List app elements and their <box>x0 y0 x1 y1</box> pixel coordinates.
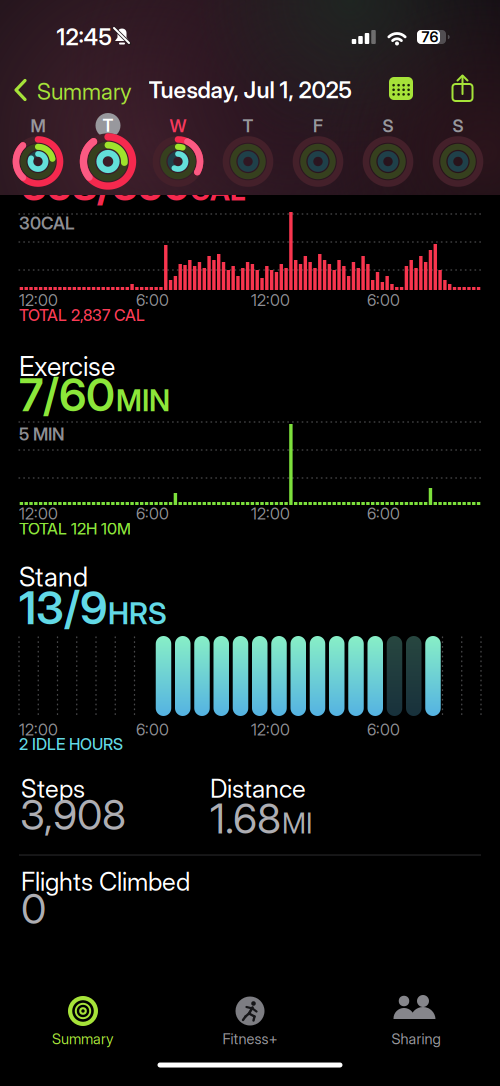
staticText: Distance <box>210 774 306 804</box>
button[interactable]: Sharing <box>0 0 167 106</box>
staticText: 358/350 <box>21 161 190 210</box>
staticText: TOTAL 12H 10M <box>19 519 131 538</box>
staticText: Flights Climbed <box>21 867 190 897</box>
staticText: Stand <box>19 561 88 592</box>
staticText: Tuesday, Jul 1, 2025 <box>148 77 351 103</box>
button[interactable]: M <box>3 110 73 195</box>
staticText: HRS <box>108 596 167 631</box>
staticText: 12:00 <box>251 291 290 310</box>
staticText: Fitness+ <box>222 1030 277 1048</box>
staticText: 7/60 <box>19 368 115 421</box>
staticText: Exercise <box>19 350 115 382</box>
staticText: 6:00 <box>367 720 400 739</box>
staticText: MI <box>282 807 313 840</box>
staticText: S <box>382 116 393 136</box>
staticText: T <box>242 116 253 136</box>
staticText: W <box>169 116 186 136</box>
button[interactable]: S <box>353 110 423 195</box>
staticText: 6:00 <box>136 504 169 523</box>
staticText: Summary <box>52 1030 114 1048</box>
staticText: 30CAL <box>19 213 75 233</box>
staticText: 5 MIN <box>19 424 64 444</box>
staticText: 13/9 <box>19 581 107 634</box>
staticText: 12:00 <box>19 720 58 739</box>
staticText: 12:00 <box>19 291 58 310</box>
staticText: Steps <box>21 774 85 804</box>
button[interactable]: T <box>213 110 283 195</box>
staticText: Summary <box>37 78 132 105</box>
button[interactable]: T <box>73 110 143 195</box>
staticText: M <box>30 116 45 136</box>
staticText: 6:00 <box>136 720 169 739</box>
staticText: 3,908 <box>20 790 126 839</box>
staticText: 0 <box>21 884 46 933</box>
staticText: S <box>452 116 463 136</box>
staticText: 2 IDLE HOURS <box>19 735 123 754</box>
staticText: 12:00 <box>19 504 58 523</box>
staticText: TOTAL 2,837 CAL <box>19 306 145 325</box>
button[interactable]: W <box>143 110 213 195</box>
staticText: F <box>313 116 323 136</box>
staticText: 6:00 <box>136 291 169 310</box>
staticText: Sharing <box>391 1030 440 1048</box>
button[interactable]: S <box>423 110 493 195</box>
button[interactable]: Summary <box>0 0 166 106</box>
button[interactable]: Summary <box>0 0 130 44</box>
button[interactable]: F <box>283 110 353 195</box>
staticText: 1.68 <box>210 794 281 843</box>
staticText: 12:00 <box>251 720 290 739</box>
staticText: 76 <box>421 28 438 46</box>
staticText: CAL <box>190 174 246 207</box>
staticText: 6:00 <box>367 291 400 310</box>
staticText: MIN <box>116 383 170 418</box>
staticText: T <box>102 115 113 136</box>
staticText: 12:00 <box>251 504 290 523</box>
staticText: 6:00 <box>367 504 400 523</box>
staticText: 12:45 <box>56 24 111 50</box>
button[interactable]: Fitness+ <box>0 0 167 106</box>
